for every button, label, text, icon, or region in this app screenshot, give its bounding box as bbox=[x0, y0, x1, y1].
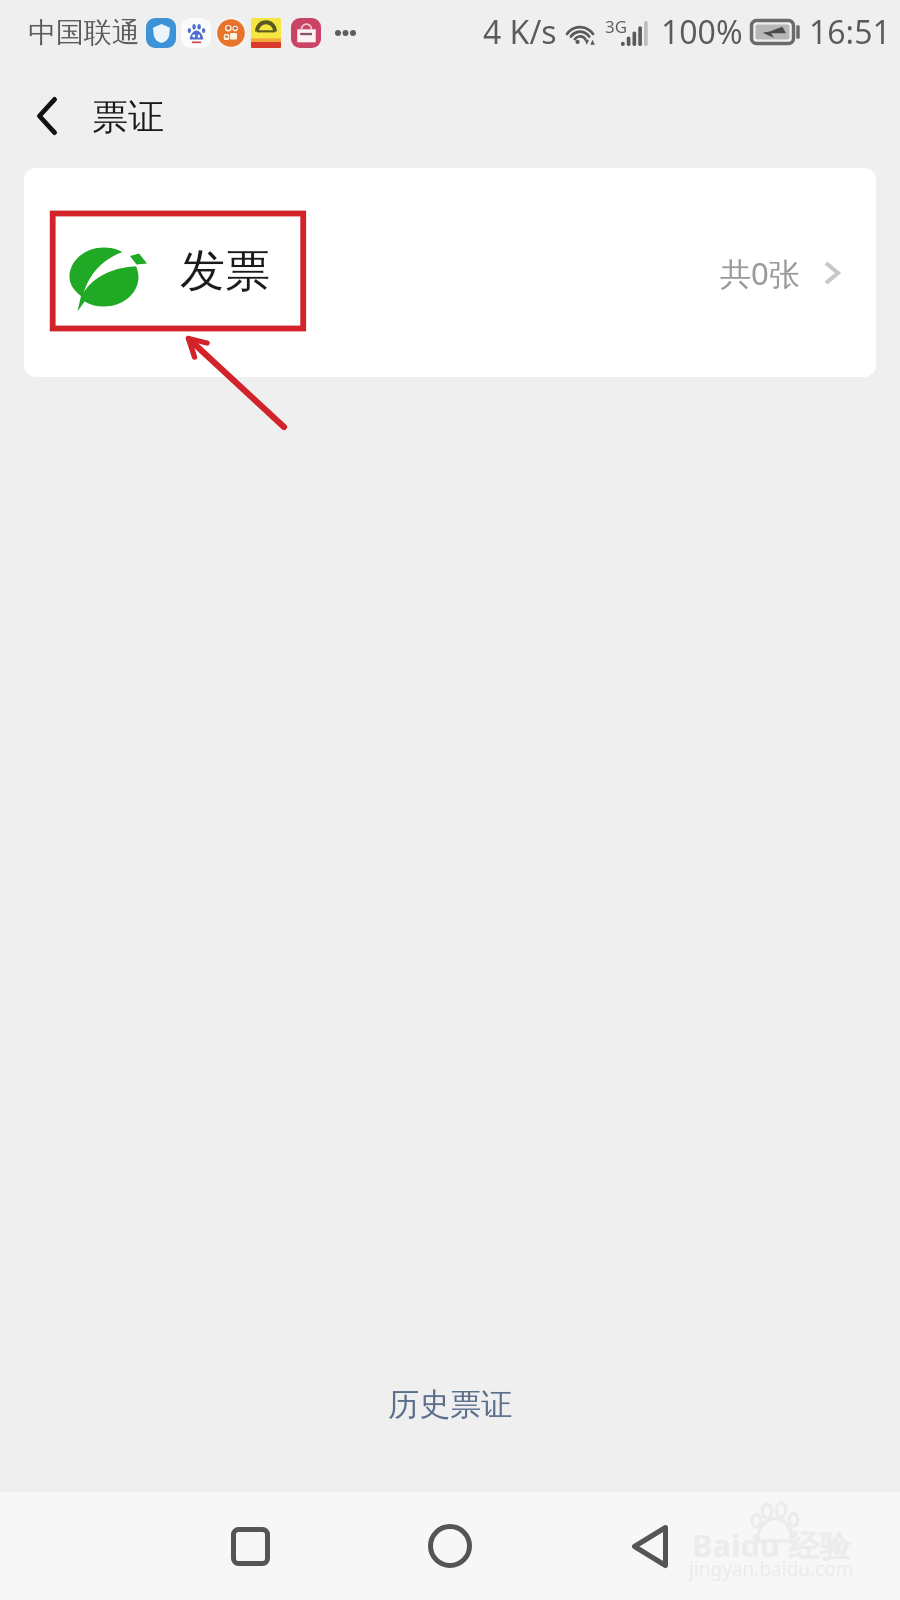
staticText: Baidu 经验 bbox=[692, 1524, 851, 1566]
button[interactable]: 历史票证 bbox=[358, 1371, 542, 1438]
staticText: 发票 bbox=[180, 243, 270, 300]
staticText: 3G bbox=[605, 15, 628, 38]
button[interactable]: Recent apps bbox=[205, 1501, 295, 1591]
staticText: 历史票证 bbox=[388, 1385, 512, 1424]
staticText: 共0张 bbox=[720, 252, 800, 294]
staticText: jingyan.baidu.com bbox=[689, 1556, 854, 1582]
button[interactable]: Back bbox=[605, 1501, 695, 1591]
button[interactable]: 发票 bbox=[24, 168, 876, 377]
staticText: 100% bbox=[661, 10, 743, 54]
button[interactable]: Home bbox=[405, 1501, 495, 1591]
button[interactable]: Back bbox=[12, 81, 82, 151]
staticText: 4 K/s bbox=[483, 10, 557, 54]
staticText: 中国联通 bbox=[28, 15, 140, 50]
staticText: 16:51 bbox=[809, 10, 891, 54]
staticText: 票证 bbox=[92, 94, 164, 139]
